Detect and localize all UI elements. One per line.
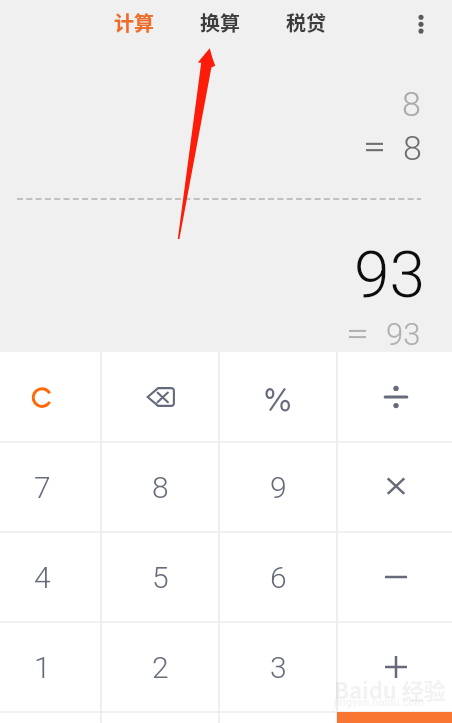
button[interactable]: 换算: [177, 0, 263, 44]
staticText: 93: [354, 238, 425, 313]
button[interactable]: 3: [219, 622, 337, 712]
button[interactable]: Clear: [0, 352, 101, 442]
button[interactable]: Plus: [337, 622, 452, 712]
staticText: 8: [152, 470, 169, 505]
staticText: 4: [34, 560, 51, 595]
staticText: 1: [34, 650, 51, 685]
button[interactable]: 5: [101, 532, 219, 622]
button[interactable]: Percent: [219, 352, 337, 442]
staticText: 6: [270, 560, 287, 595]
button[interactable]: Multiply: [337, 442, 452, 532]
staticText: 3: [270, 650, 287, 685]
other: Multiply: [383, 474, 409, 500]
staticText: Baidu 经验: [334, 673, 446, 705]
other: Clear: [30, 385, 54, 409]
button[interactable]: 7: [0, 442, 101, 532]
button[interactable]: 1: [0, 622, 101, 712]
button[interactable]: More options: [398, 0, 444, 45]
staticText: 2: [152, 650, 169, 685]
button[interactable]: Minus: [337, 532, 452, 622]
button[interactable]: 8: [101, 442, 219, 532]
staticText: 7: [34, 470, 51, 505]
other: Plus: [383, 654, 409, 680]
button[interactable]: Backspace: [101, 352, 219, 442]
button[interactable]: 2: [101, 622, 219, 712]
other: Percent: [263, 382, 293, 412]
button[interactable]: 4: [0, 532, 101, 622]
staticText: 计算: [114, 8, 154, 37]
button[interactable]: 税贷: [263, 0, 349, 44]
staticText: 税贷: [286, 8, 326, 37]
staticText: 8: [402, 84, 421, 124]
staticText: 换算: [200, 8, 240, 37]
button[interactable]: 9: [219, 442, 337, 532]
button[interactable]: 6: [219, 532, 337, 622]
staticText: 5: [152, 560, 169, 595]
staticText: 8: [403, 128, 422, 168]
button[interactable]: Divide: [337, 352, 452, 442]
staticText: 9: [270, 470, 287, 505]
other: Minus: [383, 564, 409, 590]
other: Backspace: [145, 386, 176, 408]
staticText: jingyan.baidu.com: [334, 696, 425, 709]
other: Divide: [383, 384, 409, 410]
staticText: 93: [386, 316, 421, 352]
button[interactable]: 计算: [91, 0, 177, 44]
